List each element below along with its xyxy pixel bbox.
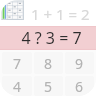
staticText: 4 <box>13 77 22 96</box>
staticText: 5 <box>44 77 53 96</box>
button[interactable]: 4 <box>2 76 32 96</box>
button[interactable]: 7 <box>2 52 32 74</box>
staticText: 9 <box>75 54 84 73</box>
staticText: 7 <box>13 54 22 73</box>
button[interactable]: 4 ? 3 = 7 <box>0 26 96 50</box>
button[interactable]: 8 <box>34 52 63 74</box>
staticText: 8 <box>44 54 53 73</box>
button[interactable]: 6 <box>65 76 94 96</box>
button[interactable]: 5 <box>34 76 63 96</box>
button[interactable]: Score table <box>1 0 25 21</box>
button[interactable]: 9 <box>65 52 94 74</box>
staticText: 1 + 1 = 2 <box>31 4 90 24</box>
staticText: 4 ? 3 = 7 <box>21 27 82 49</box>
staticText: 6 <box>75 77 84 96</box>
